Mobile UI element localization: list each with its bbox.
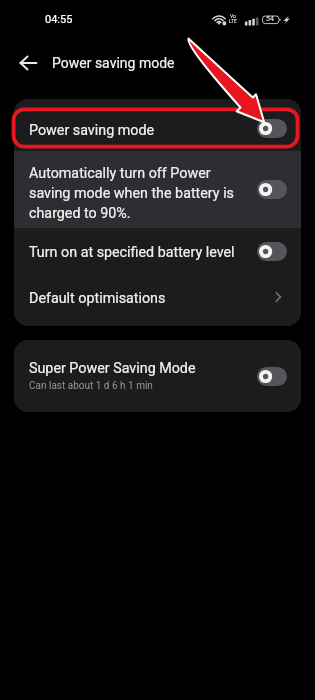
button[interactable]: Toggle [257,242,287,261]
staticText: Turn on at specified battery level [29,244,235,261]
button[interactable]: Automatically turn off Power saving mode… [14,151,301,228]
staticText: Power saving mode [29,122,155,139]
staticText: Super Power Saving Mode [29,360,196,377]
staticText: LTE [229,18,237,24]
button[interactable]: Toggle [257,180,287,199]
staticText: Vo [230,13,236,19]
staticText: Can last about 1 d 6 h 1 min [29,380,153,392]
button[interactable]: Default optimisations [14,274,301,319]
button[interactable]: Back [10,45,46,81]
staticText: Default optimisations [29,290,166,307]
staticText: 54 [266,15,274,23]
button[interactable]: Turn on at specified battery level [14,228,301,274]
button[interactable]: Power saving mode [14,106,301,151]
staticText: 04:55 [45,13,73,26]
button[interactable]: Toggle [257,367,287,386]
staticText: Power saving mode [52,55,175,71]
button[interactable]: Toggle [257,119,287,138]
button[interactable]: Super Power Saving Mode [14,347,301,405]
staticText: Automatically turn off Power saving mode… [29,165,235,221]
